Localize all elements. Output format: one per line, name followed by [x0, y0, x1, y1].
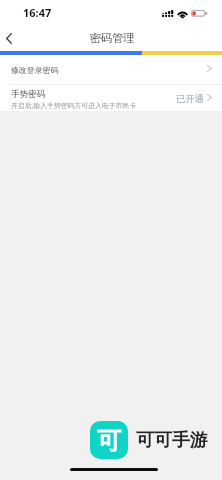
button[interactable]: 手势密码	[0, 83, 222, 111]
staticText: 可可手游	[136, 429, 208, 452]
staticText: 密码管理	[89, 31, 135, 45]
staticText: 开启后,输入手势密码方可进入电子市民卡	[11, 101, 137, 110]
staticText: 手势密码	[11, 89, 46, 100]
button[interactable]: Back	[0, 24, 17, 51]
staticText: 16:47	[23, 5, 52, 20]
staticText: 可	[97, 426, 121, 456]
staticText: 已开通	[176, 93, 204, 105]
staticText: 修改登录密码	[11, 65, 59, 75]
button[interactable]: 修改登录密码	[0, 55, 222, 82]
